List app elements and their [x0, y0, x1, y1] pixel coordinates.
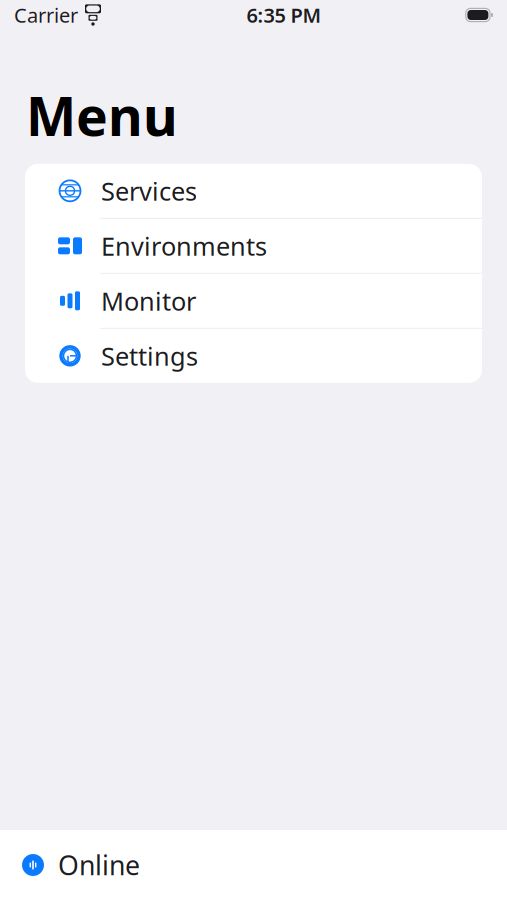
button[interactable]: Services — [25, 164, 482, 219]
staticText: Online — [58, 847, 140, 883]
staticText: Settings — [101, 339, 198, 373]
staticText: Carrier — [14, 2, 78, 28]
staticText: 6:35 PM — [246, 2, 321, 28]
button[interactable]: Environments — [25, 219, 482, 274]
button[interactable]: Settings — [25, 329, 482, 383]
staticText: Menu — [26, 80, 178, 151]
staticText: Services — [101, 174, 197, 208]
staticText: Monitor — [101, 284, 196, 318]
staticText: Environments — [101, 229, 267, 263]
button[interactable]: Monitor — [25, 274, 482, 329]
